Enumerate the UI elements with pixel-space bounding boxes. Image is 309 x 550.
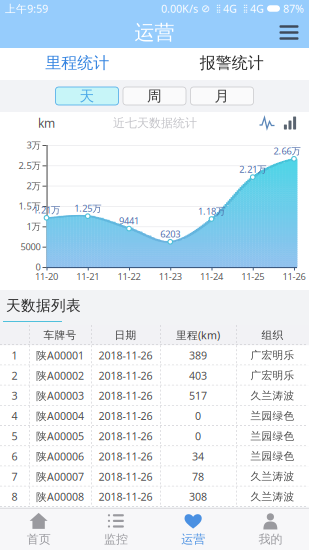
staticText: 87%	[280, 1, 304, 16]
staticText: 2万	[26, 179, 40, 192]
staticText: ⦙⦙ 4G	[237, 1, 267, 16]
staticText: 运营	[181, 532, 205, 547]
staticText: 陕A00003	[36, 389, 84, 403]
staticText: 403	[189, 368, 207, 383]
staticText: 1.21万	[33, 204, 60, 216]
staticText: 日期	[114, 328, 136, 342]
staticText: 广宏明乐	[250, 369, 294, 382]
button[interactable]: 周	[123, 87, 186, 105]
staticText: 9441	[119, 214, 139, 227]
staticText: 车牌号	[43, 328, 76, 342]
staticText: 11-26	[282, 270, 305, 283]
staticText: 2018-11-26	[98, 389, 152, 403]
staticText: 1	[11, 348, 17, 362]
staticText: 2018-11-26	[98, 449, 152, 463]
button[interactable]: 首页	[0, 509, 77, 550]
staticText: 389	[189, 348, 207, 362]
staticText: 5	[11, 429, 17, 443]
staticText: 陕A00005	[36, 429, 84, 443]
staticText: 2018-11-26	[98, 469, 152, 484]
staticText: 1万	[26, 220, 40, 232]
button[interactable]: Menu	[269, 17, 309, 48]
staticText: 天	[79, 87, 94, 105]
staticText: ⊘	[198, 2, 210, 14]
staticText: 陕A00004	[36, 409, 84, 423]
staticText: 0	[35, 261, 40, 273]
button[interactable]: 报警统计	[154, 48, 309, 80]
staticText: 1.5万	[18, 200, 40, 212]
staticText: 11-23	[159, 270, 182, 283]
staticText: 2	[11, 368, 17, 383]
staticText: 近七天数据统计	[113, 116, 197, 130]
staticText: 陕A00002	[36, 368, 84, 383]
staticText: 5000	[20, 240, 40, 253]
staticText: 3万	[26, 139, 40, 151]
staticText: 月	[214, 87, 229, 105]
staticText: 78	[192, 469, 204, 484]
staticText: 2018-11-26	[98, 429, 152, 443]
staticText: 0.00K/s	[161, 1, 198, 16]
staticText: 广宏明乐	[250, 349, 294, 362]
staticText: km	[38, 115, 55, 131]
staticText: 308	[189, 490, 207, 504]
staticText: 0	[195, 409, 201, 423]
staticText: 2018-11-26	[98, 348, 152, 362]
staticText: 天数据列表	[6, 296, 81, 314]
staticText: 上午9:59	[5, 1, 48, 16]
staticText: 2.21万	[239, 163, 266, 175]
staticText: 兰园绿色	[250, 450, 294, 463]
staticText: 兰园绿色	[250, 429, 294, 443]
button[interactable]: 月	[190, 87, 253, 105]
staticText: 6203	[160, 228, 180, 240]
staticText: 6	[11, 449, 17, 463]
staticText: 2018-11-26	[98, 368, 152, 383]
staticText: 517	[189, 389, 207, 403]
staticText: 首页	[27, 532, 51, 547]
staticText: 34	[192, 449, 204, 463]
staticText: 兰园绿色	[250, 409, 294, 422]
staticText: 里程(km)	[176, 328, 220, 342]
staticText: ⦙⦙ 4G	[210, 1, 237, 16]
staticText: 周	[147, 87, 162, 105]
staticText: 陕A00008	[36, 490, 84, 504]
staticText: 8	[11, 490, 17, 504]
staticText: 久兰涛波	[250, 389, 294, 402]
staticText: 陕A00006	[36, 449, 84, 463]
staticText: 陕A00001	[36, 348, 84, 362]
staticText: 1.25万	[74, 202, 101, 214]
staticText: 运营	[134, 20, 174, 45]
staticText: 1.18万	[198, 205, 225, 217]
staticText: 2018-11-26	[98, 409, 152, 423]
staticText: 2.66万	[273, 145, 300, 157]
staticText: 3	[11, 389, 17, 403]
staticText: 4	[11, 409, 17, 423]
staticText: 里程统计	[45, 53, 109, 73]
staticText: 组织	[261, 328, 283, 342]
button[interactable]: 天	[55, 87, 118, 105]
staticText: 11-24	[200, 270, 223, 283]
staticText: 11-21	[76, 270, 99, 283]
staticText: 我的	[258, 532, 282, 547]
staticText: 0	[195, 429, 201, 443]
button[interactable]: Bar chart	[279, 114, 301, 132]
staticText: 久兰涛波	[250, 470, 294, 483]
staticText: 报警统计	[200, 53, 264, 73]
staticText: 2.5万	[18, 159, 40, 171]
staticText: 陕A00007	[36, 469, 84, 484]
button[interactable]: Line chart	[255, 114, 279, 132]
button[interactable]: 运营	[154, 509, 232, 550]
staticText: 11-20	[35, 270, 58, 283]
staticText: 2018-11-26	[98, 490, 152, 504]
staticText: 监控	[104, 532, 128, 547]
staticText: 11-25	[241, 270, 264, 283]
staticText: 11-22	[117, 270, 140, 283]
staticText: 7	[11, 469, 17, 484]
staticText: 久兰涛波	[250, 490, 294, 503]
button[interactable]: 里程统计	[0, 48, 154, 80]
button[interactable]: 我的	[232, 509, 309, 550]
button[interactable]: 监控	[77, 509, 154, 550]
